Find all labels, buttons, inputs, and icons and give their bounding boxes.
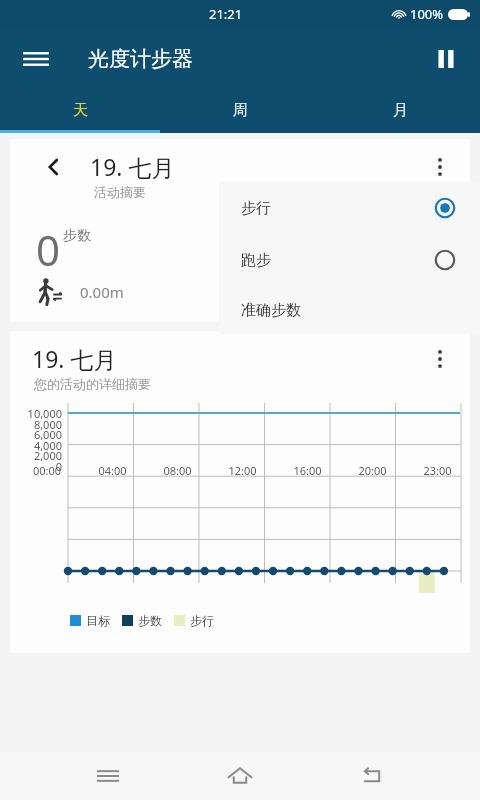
staticText: 21:21 [209,5,243,23]
staticText: 6,000 [10,427,62,442]
staticText: 0.00m [80,282,124,302]
staticText: 光度计步器 [88,46,193,72]
button[interactable]: Recent apps [84,752,132,800]
staticText: 步数 [138,613,162,628]
button[interactable]: Previous day [40,153,68,181]
staticText: 天 [73,101,88,120]
button[interactable]: 天 [0,90,160,130]
staticText: 步数 [63,227,91,245]
button[interactable]: Previous day [10,139,470,322]
staticText: 8,000 [10,417,62,432]
staticText: 10,000 [10,406,62,421]
button[interactable]: Pause [424,37,468,81]
staticText: 00:00 [14,463,80,478]
staticText: 4,000 [10,438,62,453]
staticText: 23:00 [405,463,470,478]
button[interactable]: Home [216,752,264,800]
staticText: 月 [393,101,408,120]
staticText: 步行 [190,613,214,628]
staticText: 活动摘要 [94,184,146,200]
staticText: 08:00 [145,463,210,478]
staticText: 04:00 [80,463,145,478]
staticText: 20:00 [340,463,405,478]
button[interactable]: 周 [160,90,320,130]
button[interactable]: Menu [14,37,58,81]
staticText: 跑步 [241,251,271,270]
staticText: 0 [10,459,62,474]
staticText: 周 [233,101,248,120]
button[interactable]: More options [422,341,458,377]
staticText: 准确步数 [241,301,301,320]
staticText: 100% [410,5,444,23]
staticText: 16:00 [275,463,340,478]
button[interactable]: More options [422,149,458,185]
button[interactable]: 步行 [219,182,480,234]
staticText: 2,000 [10,448,62,463]
staticText: 19. 七月 [32,343,117,374]
button[interactable]: Back [348,752,396,800]
staticText: 0 [36,221,61,278]
staticText: 您的活动的详细摘要 [34,376,151,392]
button[interactable]: 19. 七月 [10,331,470,653]
button[interactable]: 月 [320,90,480,130]
staticText: 12:00 [210,463,275,478]
staticText: 19. 七月 [90,151,175,182]
staticText: 步行 [241,199,271,218]
button[interactable]: 跑步 [219,234,480,286]
staticText: 目标 [86,613,110,628]
button[interactable]: 准确步数 [219,286,480,334]
